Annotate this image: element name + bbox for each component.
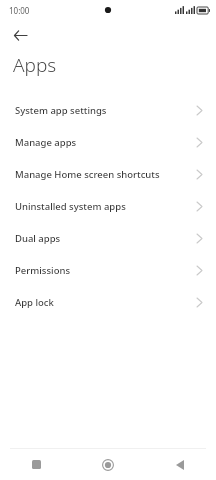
- staticText: Manage Home screen shortcuts: [15, 168, 160, 181]
- button[interactable]: App lock: [0, 286, 216, 318]
- button[interactable]: Permissions: [0, 254, 216, 286]
- staticText: Manage apps: [15, 136, 77, 149]
- button[interactable]: Back: [0, 20, 216, 50]
- staticText: Permissions: [15, 264, 71, 277]
- button[interactable]: Uninstalled system apps: [0, 190, 216, 222]
- button[interactable]: Recents: [0, 449, 72, 480]
- staticText: Uninstalled system apps: [15, 200, 126, 213]
- staticText: Dual apps: [15, 232, 61, 245]
- button[interactable]: Dual apps: [0, 222, 216, 254]
- staticText: Apps: [13, 52, 57, 78]
- button[interactable]: Home: [72, 449, 144, 480]
- staticText: System app settings: [15, 104, 107, 117]
- button[interactable]: Manage Home screen shortcuts: [0, 158, 216, 190]
- button[interactable]: Manage apps: [0, 126, 216, 158]
- button[interactable]: Back: [144, 449, 216, 480]
- staticText: App lock: [15, 296, 54, 309]
- staticText: 10:00: [9, 5, 30, 16]
- button[interactable]: System app settings: [0, 94, 216, 126]
